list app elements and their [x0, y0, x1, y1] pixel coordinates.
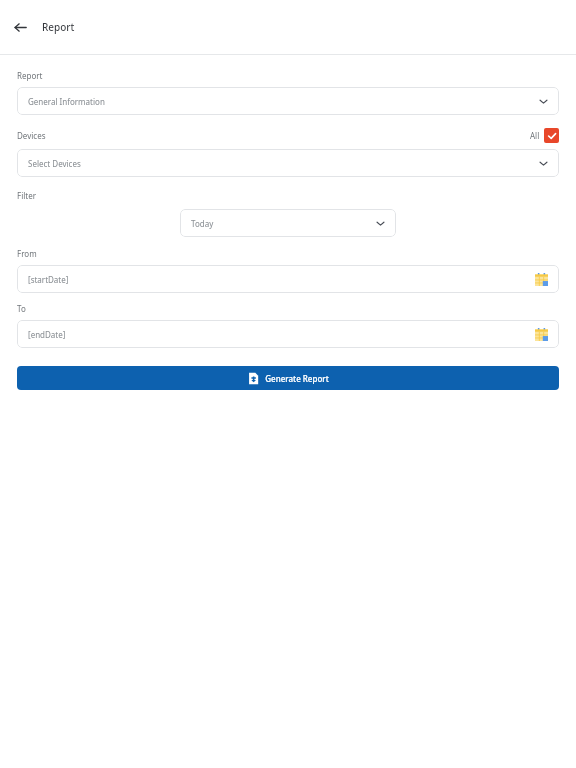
- staticText: Report: [17, 70, 43, 81]
- staticText: All: [530, 130, 540, 141]
- button[interactable]: General Information: [17, 87, 559, 115]
- button[interactable]: Today: [180, 209, 396, 237]
- staticText: Select Devices: [28, 158, 81, 169]
- staticText: From: [17, 248, 37, 259]
- staticText: To: [17, 303, 26, 314]
- button[interactable]: Back: [4, 11, 36, 43]
- button[interactable]: Pick date: [534, 272, 548, 286]
- staticText: General Information: [28, 96, 105, 107]
- button[interactable]: Select Devices: [17, 149, 559, 177]
- staticText: Generate Report: [265, 373, 329, 384]
- staticText: Devices: [17, 130, 46, 141]
- staticText: Report: [42, 20, 75, 34]
- button[interactable]: [endDate]: [17, 320, 559, 348]
- button[interactable]: All: [530, 128, 559, 143]
- staticText: Filter: [17, 190, 36, 201]
- staticText: Today: [191, 218, 214, 229]
- button[interactable]: [startDate]: [17, 265, 559, 293]
- button[interactable]: Generate Report: [17, 366, 559, 390]
- button[interactable]: Pick date: [534, 327, 548, 341]
- staticText: [startDate]: [28, 274, 69, 285]
- staticText: [endDate]: [28, 329, 66, 340]
